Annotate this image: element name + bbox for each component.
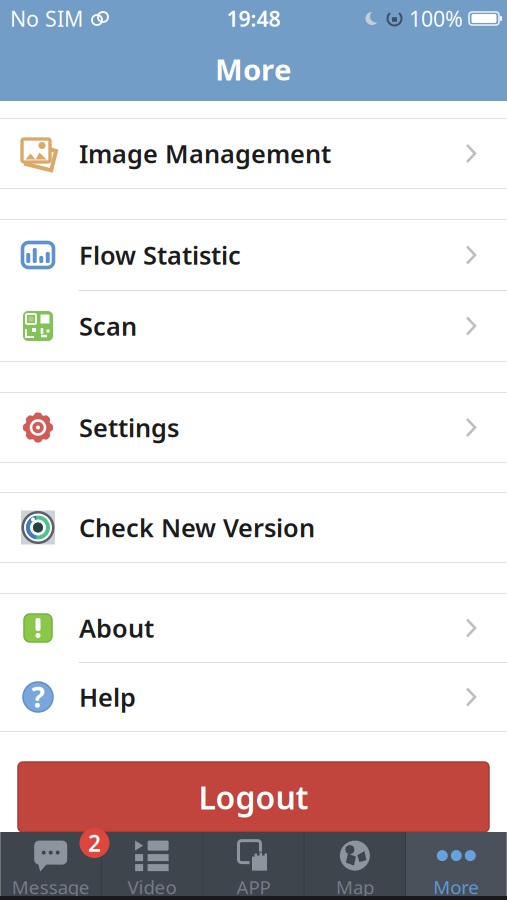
staticText: Help bbox=[79, 680, 136, 714]
staticText: Scan bbox=[79, 309, 137, 343]
staticText: About bbox=[79, 611, 154, 645]
button[interactable]: Scan bbox=[0, 291, 507, 361]
staticText: Settings bbox=[79, 411, 179, 444]
button[interactable]: ? bbox=[0, 663, 507, 731]
button[interactable]: Image Management bbox=[0, 119, 507, 188]
staticText: 2 bbox=[88, 828, 101, 858]
staticText: More bbox=[433, 875, 479, 899]
staticText: APP bbox=[236, 875, 270, 899]
staticText: 19:48 bbox=[226, 4, 280, 33]
button[interactable]: Map bbox=[305, 832, 405, 896]
staticText: ? bbox=[31, 678, 44, 716]
button[interactable]: Video bbox=[102, 832, 202, 896]
button[interactable]: APP bbox=[203, 832, 304, 896]
button[interactable]: More bbox=[406, 832, 506, 896]
button[interactable]: Check New Version bbox=[0, 493, 507, 562]
button[interactable]: Logout bbox=[18, 762, 489, 832]
staticText: Message bbox=[12, 875, 90, 899]
staticText: Image Management bbox=[79, 137, 331, 170]
staticText: 100% bbox=[409, 4, 463, 33]
staticText: Video bbox=[128, 875, 177, 899]
staticText: Check New Version bbox=[79, 511, 315, 544]
staticText: Map bbox=[336, 875, 374, 899]
button[interactable]: Flow Statistic bbox=[0, 220, 507, 290]
button[interactable]: Message bbox=[0, 832, 101, 896]
staticText: Logout bbox=[198, 776, 308, 818]
staticText: More bbox=[215, 49, 292, 88]
button[interactable]: Settings bbox=[0, 393, 507, 462]
staticText: Flow Statistic bbox=[79, 238, 241, 272]
staticText: No SIM bbox=[10, 4, 83, 33]
button[interactable]: About bbox=[0, 594, 507, 662]
